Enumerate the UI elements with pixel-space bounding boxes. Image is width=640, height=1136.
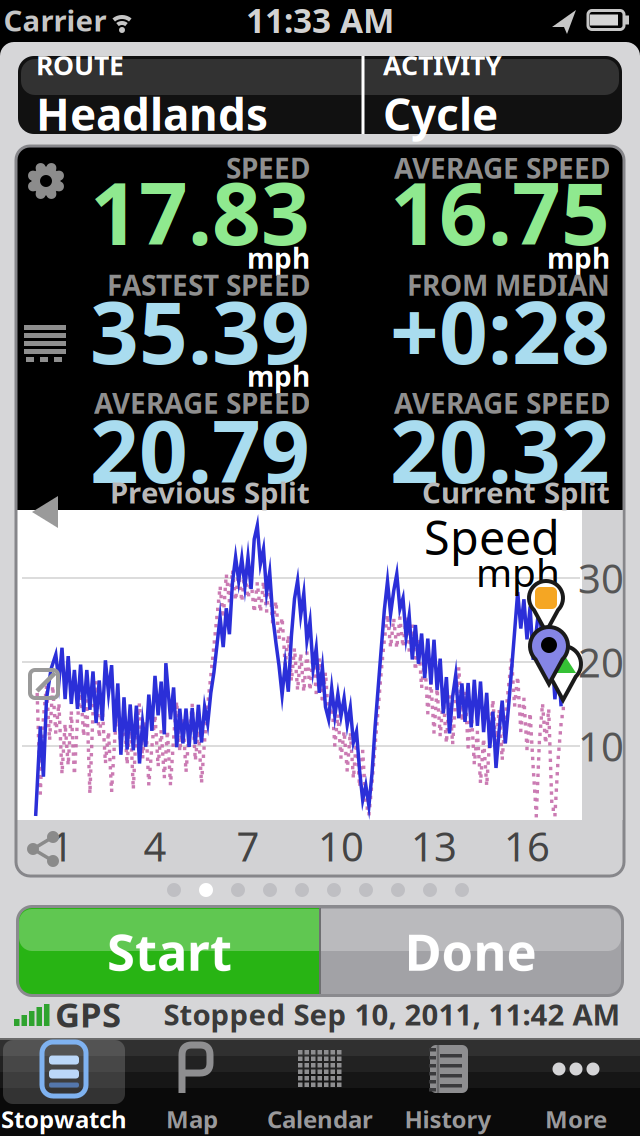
button[interactable]: Hide stats bbox=[32, 496, 58, 528]
button[interactable]: Stopwatch bbox=[1, 1039, 127, 1135]
button[interactable]: History bbox=[385, 1039, 511, 1135]
staticText: Stopwatch bbox=[1, 1103, 127, 1135]
staticText: Carrier bbox=[3, 0, 106, 39]
staticText: SPEED bbox=[226, 149, 310, 187]
staticText: History bbox=[404, 1103, 491, 1135]
staticText: mph bbox=[547, 239, 610, 277]
staticText: Previous Split bbox=[110, 472, 310, 511]
staticText: mph bbox=[247, 357, 310, 395]
button[interactable]: Done bbox=[320, 908, 621, 994]
button[interactable]: Share bbox=[24, 829, 64, 869]
staticText: 10 bbox=[578, 719, 624, 772]
staticText: mph bbox=[476, 546, 560, 598]
staticText: Current Split bbox=[422, 472, 610, 511]
staticText: AVERAGE SPEED bbox=[94, 384, 310, 422]
staticText: Done bbox=[404, 917, 536, 985]
button[interactable]: Calendar bbox=[257, 1039, 383, 1135]
staticText: 16 bbox=[504, 819, 550, 872]
staticText: 20.32 bbox=[390, 393, 610, 507]
staticText: GPS bbox=[55, 991, 121, 1037]
staticText: 20.79 bbox=[90, 393, 310, 507]
staticText: Calendar bbox=[267, 1103, 373, 1135]
staticText: 30 bbox=[578, 551, 624, 604]
staticText: mph bbox=[247, 239, 310, 277]
staticText: AVERAGE SPEED bbox=[394, 149, 610, 187]
staticText: 13 bbox=[411, 819, 457, 872]
staticText: Map bbox=[166, 1103, 218, 1135]
button[interactable]: ROUTE bbox=[36, 58, 356, 132]
button[interactable]: ACTIVITY bbox=[383, 58, 613, 132]
staticText: ROUTE bbox=[36, 47, 124, 82]
staticText: AVERAGE SPEED bbox=[394, 384, 610, 422]
button[interactable]: Map bbox=[129, 1039, 255, 1135]
staticText: Headlands bbox=[36, 84, 268, 143]
staticText: Start bbox=[107, 917, 232, 985]
staticText: FROM MEDIAN bbox=[407, 266, 610, 304]
button[interactable]: Start bbox=[19, 908, 320, 994]
staticText: Cycle bbox=[383, 84, 498, 143]
button[interactable]: Laps bbox=[24, 325, 68, 365]
staticText: Speed bbox=[424, 506, 560, 568]
staticText: 20 bbox=[578, 635, 624, 688]
staticText: More bbox=[545, 1103, 607, 1135]
button[interactable]: More bbox=[513, 1039, 639, 1135]
staticText: Stopped Sep 10, 2011, 11:42 AM bbox=[163, 994, 620, 1033]
staticText: FASTEST SPEED bbox=[107, 266, 310, 304]
button[interactable]: Edit bbox=[28, 664, 64, 700]
staticText: 1 bbox=[50, 819, 73, 872]
staticText: +0:28 bbox=[390, 274, 610, 388]
staticText: 17.83 bbox=[90, 155, 310, 269]
staticText: 16.75 bbox=[390, 155, 610, 269]
staticText: 35.39 bbox=[90, 274, 310, 388]
staticText: 10 bbox=[318, 819, 364, 872]
staticText: ACTIVITY bbox=[383, 47, 502, 82]
button[interactable]: Settings bbox=[22, 157, 70, 205]
staticText: 7 bbox=[236, 819, 259, 872]
staticText: 11:33 AM bbox=[246, 0, 394, 42]
staticText: 4 bbox=[143, 819, 166, 872]
